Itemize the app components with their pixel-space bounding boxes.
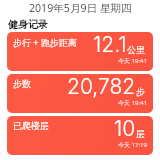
- staticText: 步行 + 跑步距离: [13, 36, 77, 48]
- staticText: 10: [114, 116, 136, 141]
- staticText: 今天 17:19: [118, 141, 147, 149]
- button[interactable]: 已爬楼层: [7, 116, 153, 155]
- staticText: 12.1: [93, 32, 127, 57]
- staticText: 层: [136, 128, 145, 139]
- staticText: 步: [136, 86, 145, 97]
- button[interactable]: 步数: [7, 74, 153, 113]
- staticText: 公里: [127, 44, 145, 55]
- staticText: 今天 19:41: [118, 57, 147, 65]
- staticText: 已爬楼层: [13, 120, 49, 131]
- staticText: 20,782: [67, 74, 136, 99]
- staticText: 健身记录: [8, 18, 48, 31]
- staticText: 2019年5月9日 星期四: [29, 1, 132, 14]
- staticText: 今天 19:41: [118, 99, 147, 107]
- staticText: 步数: [13, 78, 31, 89]
- button[interactable]: 步行 + 跑步距离: [7, 32, 153, 71]
